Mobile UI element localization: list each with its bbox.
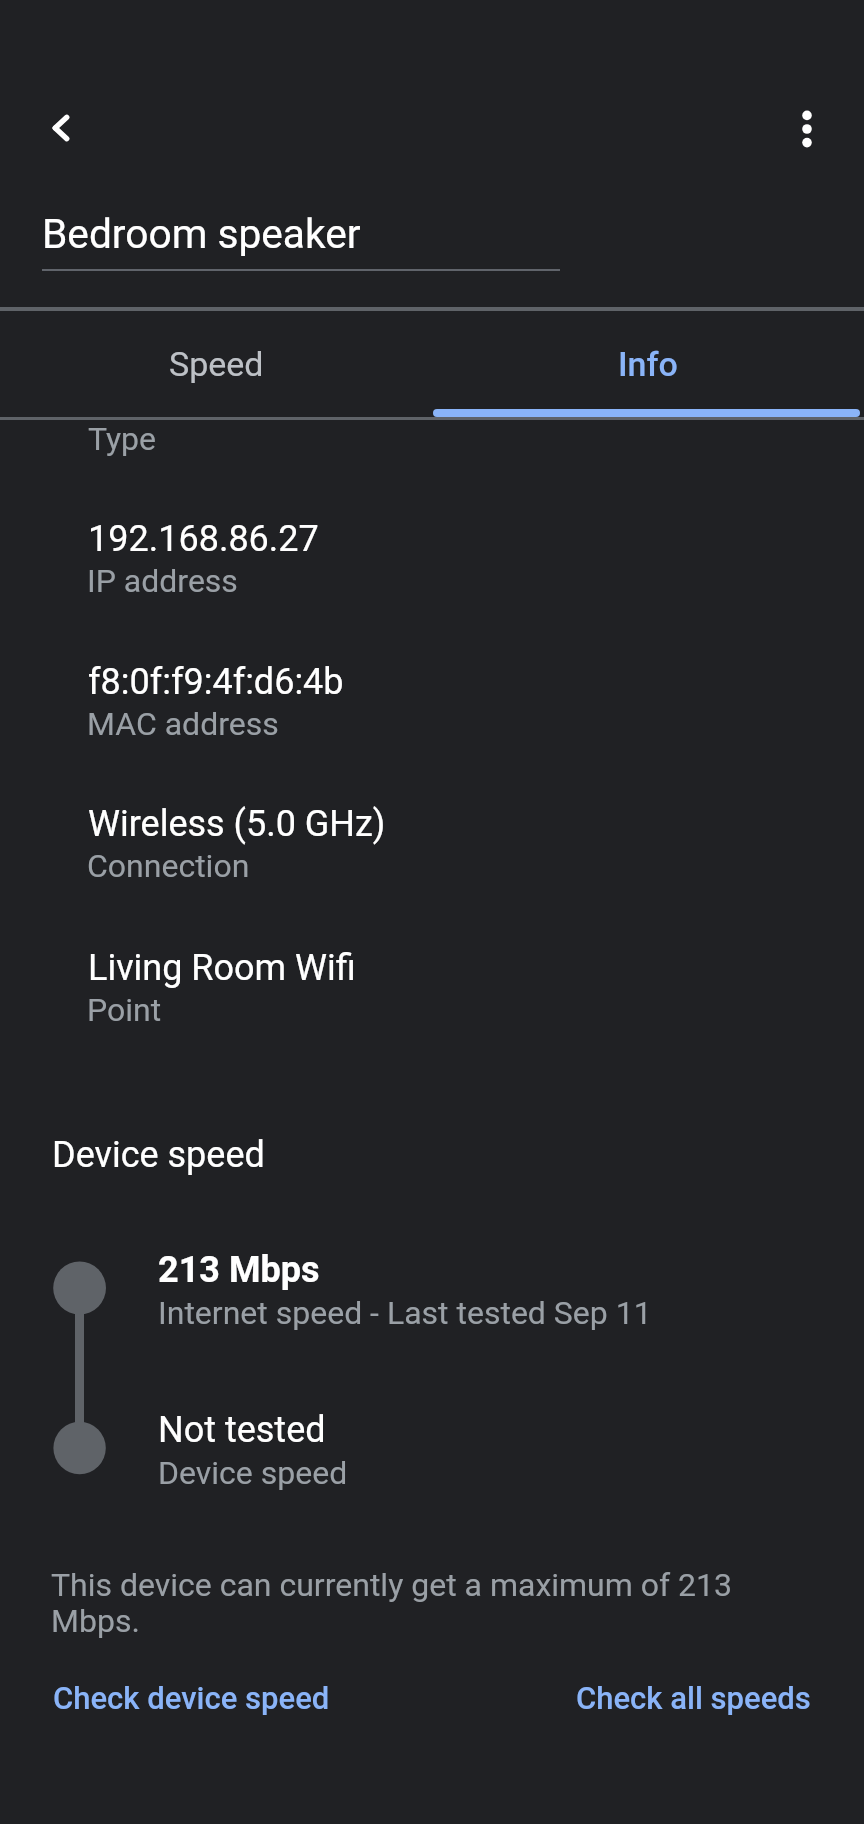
staticText: Speed [169, 344, 264, 384]
staticText: Living Room Wifi [88, 947, 356, 989]
staticText: Wireless (5.0 GHz) [88, 803, 386, 845]
staticText: 192.168.86.27 [88, 518, 319, 560]
staticText: Not tested [158, 1409, 326, 1451]
staticText: Type [88, 420, 157, 458]
staticText: MAC address [87, 705, 279, 743]
staticText: Bedroom speaker [42, 210, 361, 258]
staticText: IP address [87, 562, 238, 600]
staticText: Connection [87, 847, 250, 885]
button[interactable]: Back [21, 88, 101, 168]
button[interactable]: More options [767, 89, 847, 169]
button[interactable]: Living Room Wifi [0, 935, 864, 1051]
staticText: Info [618, 344, 678, 384]
staticText: Device speed [158, 1454, 348, 1492]
staticText: 213 Mbps [158, 1249, 320, 1291]
button[interactable]: Wireless (5.0 GHz) [0, 791, 864, 907]
staticText: Check device speed [53, 1680, 330, 1716]
staticText: Point [87, 991, 162, 1029]
staticText: Check all speeds [576, 1680, 811, 1716]
staticText: f8:0f:f9:4f:d6:4b [88, 661, 344, 703]
button[interactable]: Check all speeds [556, 1661, 828, 1733]
button[interactable]: Speed [0, 311, 432, 417]
staticText: Internet speed - Last tested Sep 11 [158, 1294, 652, 1332]
staticText: This device can currently get a maximum … [51, 1566, 741, 1640]
button[interactable]: f8:0f:f9:4f:d6:4b [0, 649, 864, 765]
button[interactable]: Info [432, 311, 864, 417]
button[interactable]: Check device speed [34, 1661, 346, 1733]
button[interactable]: 192.168.86.27 [0, 506, 864, 622]
staticText: Device speed [52, 1134, 265, 1176]
